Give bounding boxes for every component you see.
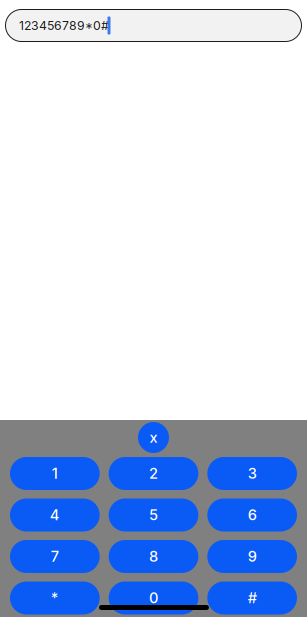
button[interactable]: 1 <box>10 457 100 490</box>
staticText: * <box>51 589 59 607</box>
staticText: 123456789*0# <box>19 18 109 33</box>
staticText: 5 <box>149 506 158 524</box>
button[interactable]: 7 <box>10 540 100 573</box>
staticText: # <box>248 589 257 607</box>
button[interactable]: 123456789*0# <box>5 9 301 41</box>
staticText: 4 <box>50 506 60 524</box>
button[interactable]: # <box>207 581 297 614</box>
staticText: 9 <box>248 548 257 565</box>
button[interactable]: Hide keypad <box>138 422 169 453</box>
staticText: 8 <box>149 548 158 565</box>
button[interactable]: 3 <box>207 457 297 490</box>
button[interactable]: 9 <box>207 540 297 573</box>
staticText: x <box>149 429 157 446</box>
staticText: 0 <box>149 589 158 607</box>
button[interactable]: 2 <box>109 457 198 490</box>
button[interactable]: 5 <box>109 498 198 531</box>
button[interactable]: 4 <box>10 498 100 531</box>
staticText: 6 <box>248 506 257 524</box>
staticText: 1 <box>52 465 58 482</box>
button[interactable]: * <box>10 581 100 614</box>
button[interactable]: 8 <box>109 540 198 573</box>
button[interactable]: 6 <box>207 498 297 531</box>
button[interactable]: 0 <box>109 581 198 614</box>
staticText: 2 <box>149 465 158 482</box>
staticText: 3 <box>248 465 257 482</box>
staticText: 7 <box>51 548 59 565</box>
